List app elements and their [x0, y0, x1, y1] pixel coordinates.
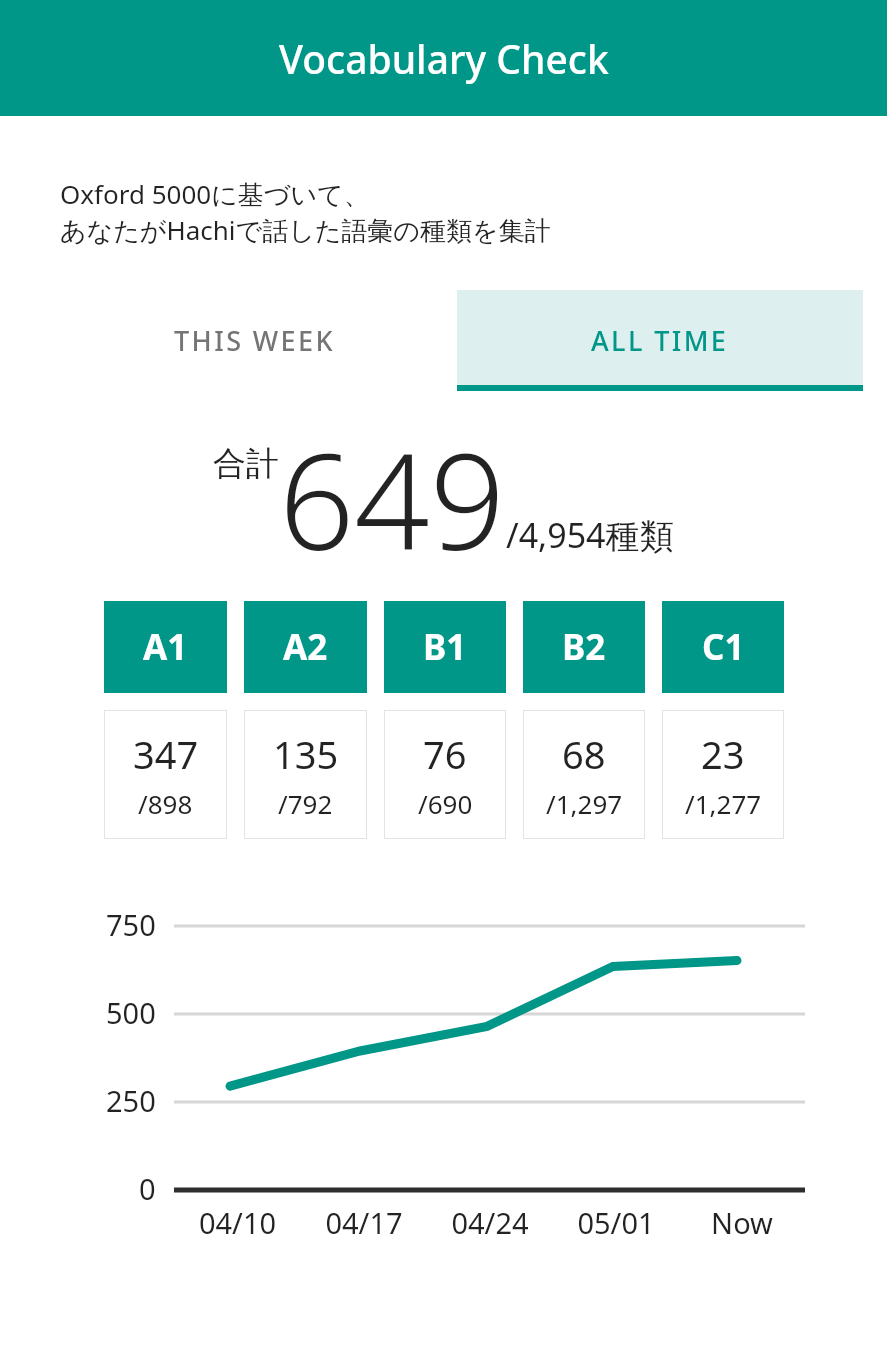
staticText: ALL TIME	[591, 322, 729, 359]
staticText: 76	[423, 728, 467, 780]
button[interactable]: THIS WEEK	[51, 290, 457, 391]
staticText: あなたがHachiで話した語彙の種類を集計	[60, 212, 551, 248]
staticText: 750	[106, 905, 156, 944]
staticText: B2	[562, 623, 606, 671]
button[interactable]: B2	[523, 601, 645, 839]
staticText: 04/10	[174, 1203, 301, 1242]
button[interactable]: A2	[244, 601, 367, 839]
staticText: Now	[679, 1203, 805, 1242]
staticText: /792	[278, 786, 333, 821]
staticText: C1	[702, 623, 745, 671]
button[interactable]: ALL TIME	[457, 290, 863, 391]
staticText: 500	[106, 993, 156, 1032]
staticText: 05/01	[553, 1203, 679, 1242]
staticText: 23	[701, 728, 745, 780]
staticText: /898	[138, 786, 193, 821]
staticText: Vocabulary Check	[279, 32, 609, 85]
staticText: B1	[423, 623, 467, 671]
staticText: Oxford 5000に基づいて、	[60, 176, 370, 212]
staticText: A2	[283, 623, 328, 671]
staticText: 04/24	[427, 1203, 553, 1242]
staticText: 347	[133, 728, 199, 780]
staticText: /1,277	[685, 786, 762, 821]
staticText: 649	[279, 409, 506, 569]
staticText: 0	[139, 1169, 156, 1208]
button[interactable]: B1	[384, 601, 506, 839]
staticText: 04/17	[301, 1203, 427, 1242]
button[interactable]: A1	[104, 601, 227, 839]
staticText: /690	[418, 786, 473, 821]
button[interactable]: C1	[662, 601, 784, 839]
staticText: /1,297	[546, 786, 623, 821]
staticText: /4,954種類	[506, 512, 674, 558]
other: Vocabulary growth line chart	[0, 899, 887, 1350]
staticText: A1	[143, 623, 188, 671]
staticText: 合計	[213, 443, 279, 485]
staticText: 68	[562, 728, 606, 780]
staticText: 250	[106, 1081, 156, 1120]
staticText: THIS WEEK	[174, 322, 335, 359]
staticText: 135	[273, 728, 339, 780]
